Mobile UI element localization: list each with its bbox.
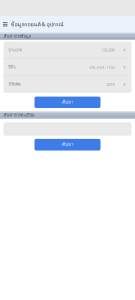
button[interactable]: ปีที่ผลิต — [3, 76, 131, 93]
staticText: EXCITER - T150 — [89, 64, 114, 70]
button[interactable]: Menu — [1, 18, 9, 30]
staticText: ปีที่ผลิต — [8, 81, 21, 87]
staticText: ค้นหา — [62, 142, 73, 148]
staticText: 2015 — [106, 82, 114, 87]
staticText: ประเภท — [8, 47, 22, 53]
button[interactable]: ประเภท — [3, 42, 131, 58]
staticText: 126-200 — [101, 47, 114, 53]
staticText: ข้อมูลรถยนต์ & อุปกรณ์ — [10, 20, 63, 28]
staticText: ยี่ห้อ — [8, 64, 15, 70]
staticText: ค้นหาจากข้อมูล — [3, 33, 30, 39]
staticText: ค้นหาจากทะเบียน — [3, 112, 34, 118]
button[interactable]: ยี่ห้อ — [3, 59, 131, 76]
button[interactable]: ค้นหา — [34, 139, 100, 150]
button[interactable]: ค้นหา — [34, 97, 100, 108]
staticText: ค้นหา — [62, 99, 73, 105]
